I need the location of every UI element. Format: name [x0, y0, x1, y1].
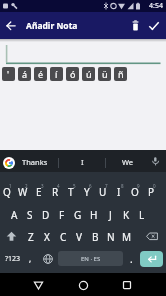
button[interactable]: L — [134, 203, 150, 226]
button[interactable]: W — [15, 180, 31, 203]
button[interactable]: N — [103, 225, 119, 248]
staticText: D — [42, 208, 50, 222]
button[interactable]: I — [111, 180, 127, 203]
button[interactable] — [117, 275, 137, 295]
staticText: 9 — [137, 183, 140, 189]
button[interactable]: T — [63, 180, 79, 203]
staticText: ?123 — [5, 254, 21, 264]
button[interactable] — [28, 275, 48, 295]
button[interactable]: ñ — [114, 67, 127, 81]
button[interactable]: K — [118, 203, 134, 226]
button[interactable]: U — [95, 180, 111, 203]
staticText: ú — [86, 68, 92, 80]
staticText: 6 — [89, 183, 92, 189]
button[interactable]: ó — [66, 67, 79, 81]
staticText: I — [81, 157, 84, 167]
staticText: S — [27, 208, 33, 222]
staticText: B — [92, 230, 99, 244]
button[interactable]: M — [119, 225, 135, 248]
button[interactable]: H — [86, 203, 102, 226]
staticText: 3 — [41, 183, 44, 189]
staticText: ñ — [118, 68, 124, 80]
button[interactable]: Y — [79, 180, 95, 203]
staticText: X — [44, 230, 50, 244]
button[interactable]: O — [127, 180, 143, 203]
button[interactable]: S — [22, 203, 38, 226]
button[interactable] — [73, 275, 93, 295]
button[interactable]: ' — [2, 67, 15, 81]
staticText: F — [59, 208, 65, 222]
button[interactable]: é — [34, 67, 47, 81]
button[interactable]: R — [47, 180, 63, 203]
button[interactable]: EN · ES — [58, 251, 123, 266]
staticText: L — [139, 208, 145, 222]
button[interactable] — [127, 17, 144, 34]
staticText: Y — [84, 185, 90, 199]
staticText: H — [90, 208, 98, 222]
staticText: M — [122, 230, 132, 244]
button[interactable]: , — [24, 247, 36, 270]
button[interactable]: Q — [0, 180, 15, 203]
button[interactable]: X — [39, 225, 55, 248]
staticText: é — [38, 68, 44, 80]
staticText: ' — [7, 68, 10, 80]
button[interactable]: E — [31, 180, 47, 203]
button[interactable] — [140, 251, 163, 267]
staticText: 8 — [121, 183, 124, 189]
staticText: O — [131, 185, 139, 199]
button[interactable]: G — [70, 203, 86, 226]
staticText: 7 — [105, 183, 108, 189]
staticText: ó — [70, 68, 76, 80]
staticText: V — [76, 230, 82, 244]
staticText: Añadir Nota — [26, 20, 78, 32]
staticText: 5 — [73, 183, 76, 189]
staticText: K — [123, 208, 130, 222]
button[interactable]: Z — [23, 225, 39, 248]
staticText: . — [130, 252, 133, 266]
button[interactable]: í — [50, 67, 63, 81]
staticText: N — [107, 230, 115, 244]
button[interactable] — [145, 17, 162, 34]
button[interactable]: ü — [98, 67, 111, 81]
button[interactable]: P — [143, 180, 159, 203]
staticText: , — [29, 253, 32, 264]
staticText: 2 — [25, 183, 28, 189]
button[interactable] — [148, 154, 162, 168]
staticText: C — [60, 230, 67, 244]
button[interactable]: B — [87, 225, 103, 248]
button[interactable]: ?123 — [1, 247, 24, 270]
staticText: We — [122, 157, 134, 167]
staticText: U — [99, 185, 107, 199]
staticText: 4:54 — [149, 1, 163, 11]
button[interactable]: V — [71, 225, 87, 248]
staticText: P — [148, 185, 155, 199]
button[interactable]: C — [55, 225, 71, 248]
button[interactable] — [2, 17, 20, 35]
button[interactable] — [141, 225, 163, 248]
staticText: T — [68, 185, 74, 199]
staticText: Z — [28, 230, 34, 244]
staticText: í — [55, 68, 58, 80]
staticText: A — [11, 208, 18, 222]
staticText: J — [109, 208, 112, 222]
button[interactable]: F — [54, 203, 70, 226]
button[interactable]: á — [18, 67, 31, 81]
button[interactable] — [0, 225, 23, 248]
button[interactable]: ú — [82, 67, 95, 81]
button[interactable]: J — [102, 203, 118, 226]
staticText: G — [74, 208, 82, 222]
staticText: 4 — [57, 183, 60, 189]
staticText: ü — [102, 68, 108, 80]
staticText: Thanks — [22, 157, 48, 167]
staticText: Q — [3, 185, 11, 199]
staticText: W — [18, 185, 28, 199]
staticText: 1 — [9, 183, 12, 189]
staticText: R — [52, 185, 59, 199]
staticText: I — [117, 185, 121, 199]
button[interactable] — [3, 157, 15, 169]
button[interactable]: A — [6, 203, 22, 226]
button[interactable] — [40, 247, 56, 270]
button[interactable]: . — [125, 247, 137, 270]
button[interactable]: D — [38, 203, 54, 226]
staticText: á — [22, 68, 28, 80]
